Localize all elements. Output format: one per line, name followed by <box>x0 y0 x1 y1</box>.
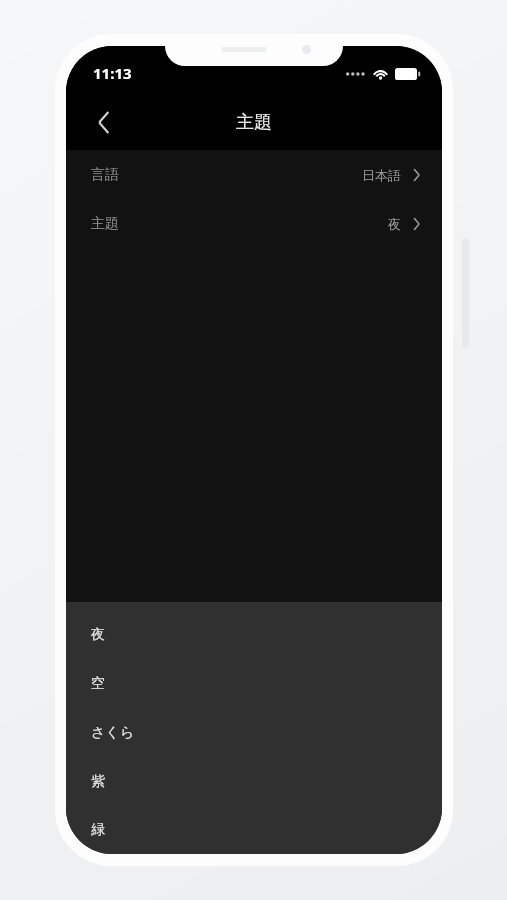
staticText: さくら <box>91 724 134 742</box>
button[interactable]: 夜 <box>66 610 442 659</box>
staticText: 夜 <box>388 216 401 232</box>
button[interactable]: 空 <box>66 659 442 708</box>
staticText: 緑 <box>91 821 105 839</box>
button[interactable]: 主題 <box>66 199 442 248</box>
button[interactable]: Back <box>80 98 128 146</box>
staticText: 紫 <box>91 773 105 791</box>
staticText: 空 <box>91 675 105 693</box>
staticText: 夜 <box>91 626 105 644</box>
button[interactable]: 言語 <box>66 150 442 199</box>
button[interactable]: さくら <box>66 708 442 757</box>
button[interactable]: 紫 <box>66 757 442 806</box>
button[interactable]: 緑 <box>66 806 442 854</box>
staticText: 主題 <box>236 111 272 134</box>
staticText: 言語 <box>91 166 119 184</box>
staticText: 主題 <box>91 215 119 233</box>
staticText: 日本語 <box>362 167 401 183</box>
staticText: 11:13 <box>93 63 132 83</box>
